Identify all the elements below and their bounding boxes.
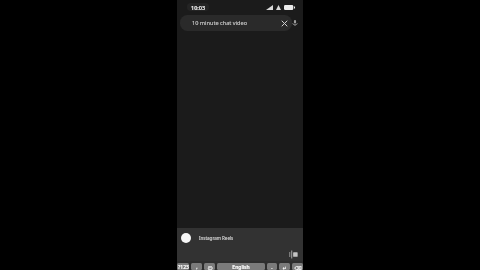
button[interactable]: Voice search <box>290 18 300 28</box>
button[interactable]: , <box>191 263 202 270</box>
button[interactable]: ↵ <box>279 263 290 270</box>
staticText: ?123 <box>178 264 189 270</box>
button[interactable]: . <box>267 263 277 270</box>
staticText: Instagram Reels <box>199 235 234 241</box>
button[interactable]: English <box>217 263 265 270</box>
staticText: ⌫ <box>294 265 302 270</box>
staticText: English <box>232 264 250 270</box>
button[interactable]: 10 minute chat video <box>180 15 292 31</box>
staticText: ☺ <box>207 265 213 270</box>
staticText: . <box>271 264 273 270</box>
button[interactable]: Instagram Reels <box>177 228 303 247</box>
button[interactable]: ☺ <box>204 263 215 270</box>
button[interactable]: ?123 <box>177 263 189 270</box>
button[interactable]: Switch keyboard <box>288 249 299 260</box>
staticText: , <box>196 264 198 270</box>
button[interactable]: Clear search <box>280 19 289 28</box>
button[interactable]: ⌫ <box>292 263 303 270</box>
staticText: ↵ <box>282 265 287 270</box>
staticText: 10:03 <box>191 4 206 11</box>
staticText: 10 minute chat video <box>192 19 248 27</box>
